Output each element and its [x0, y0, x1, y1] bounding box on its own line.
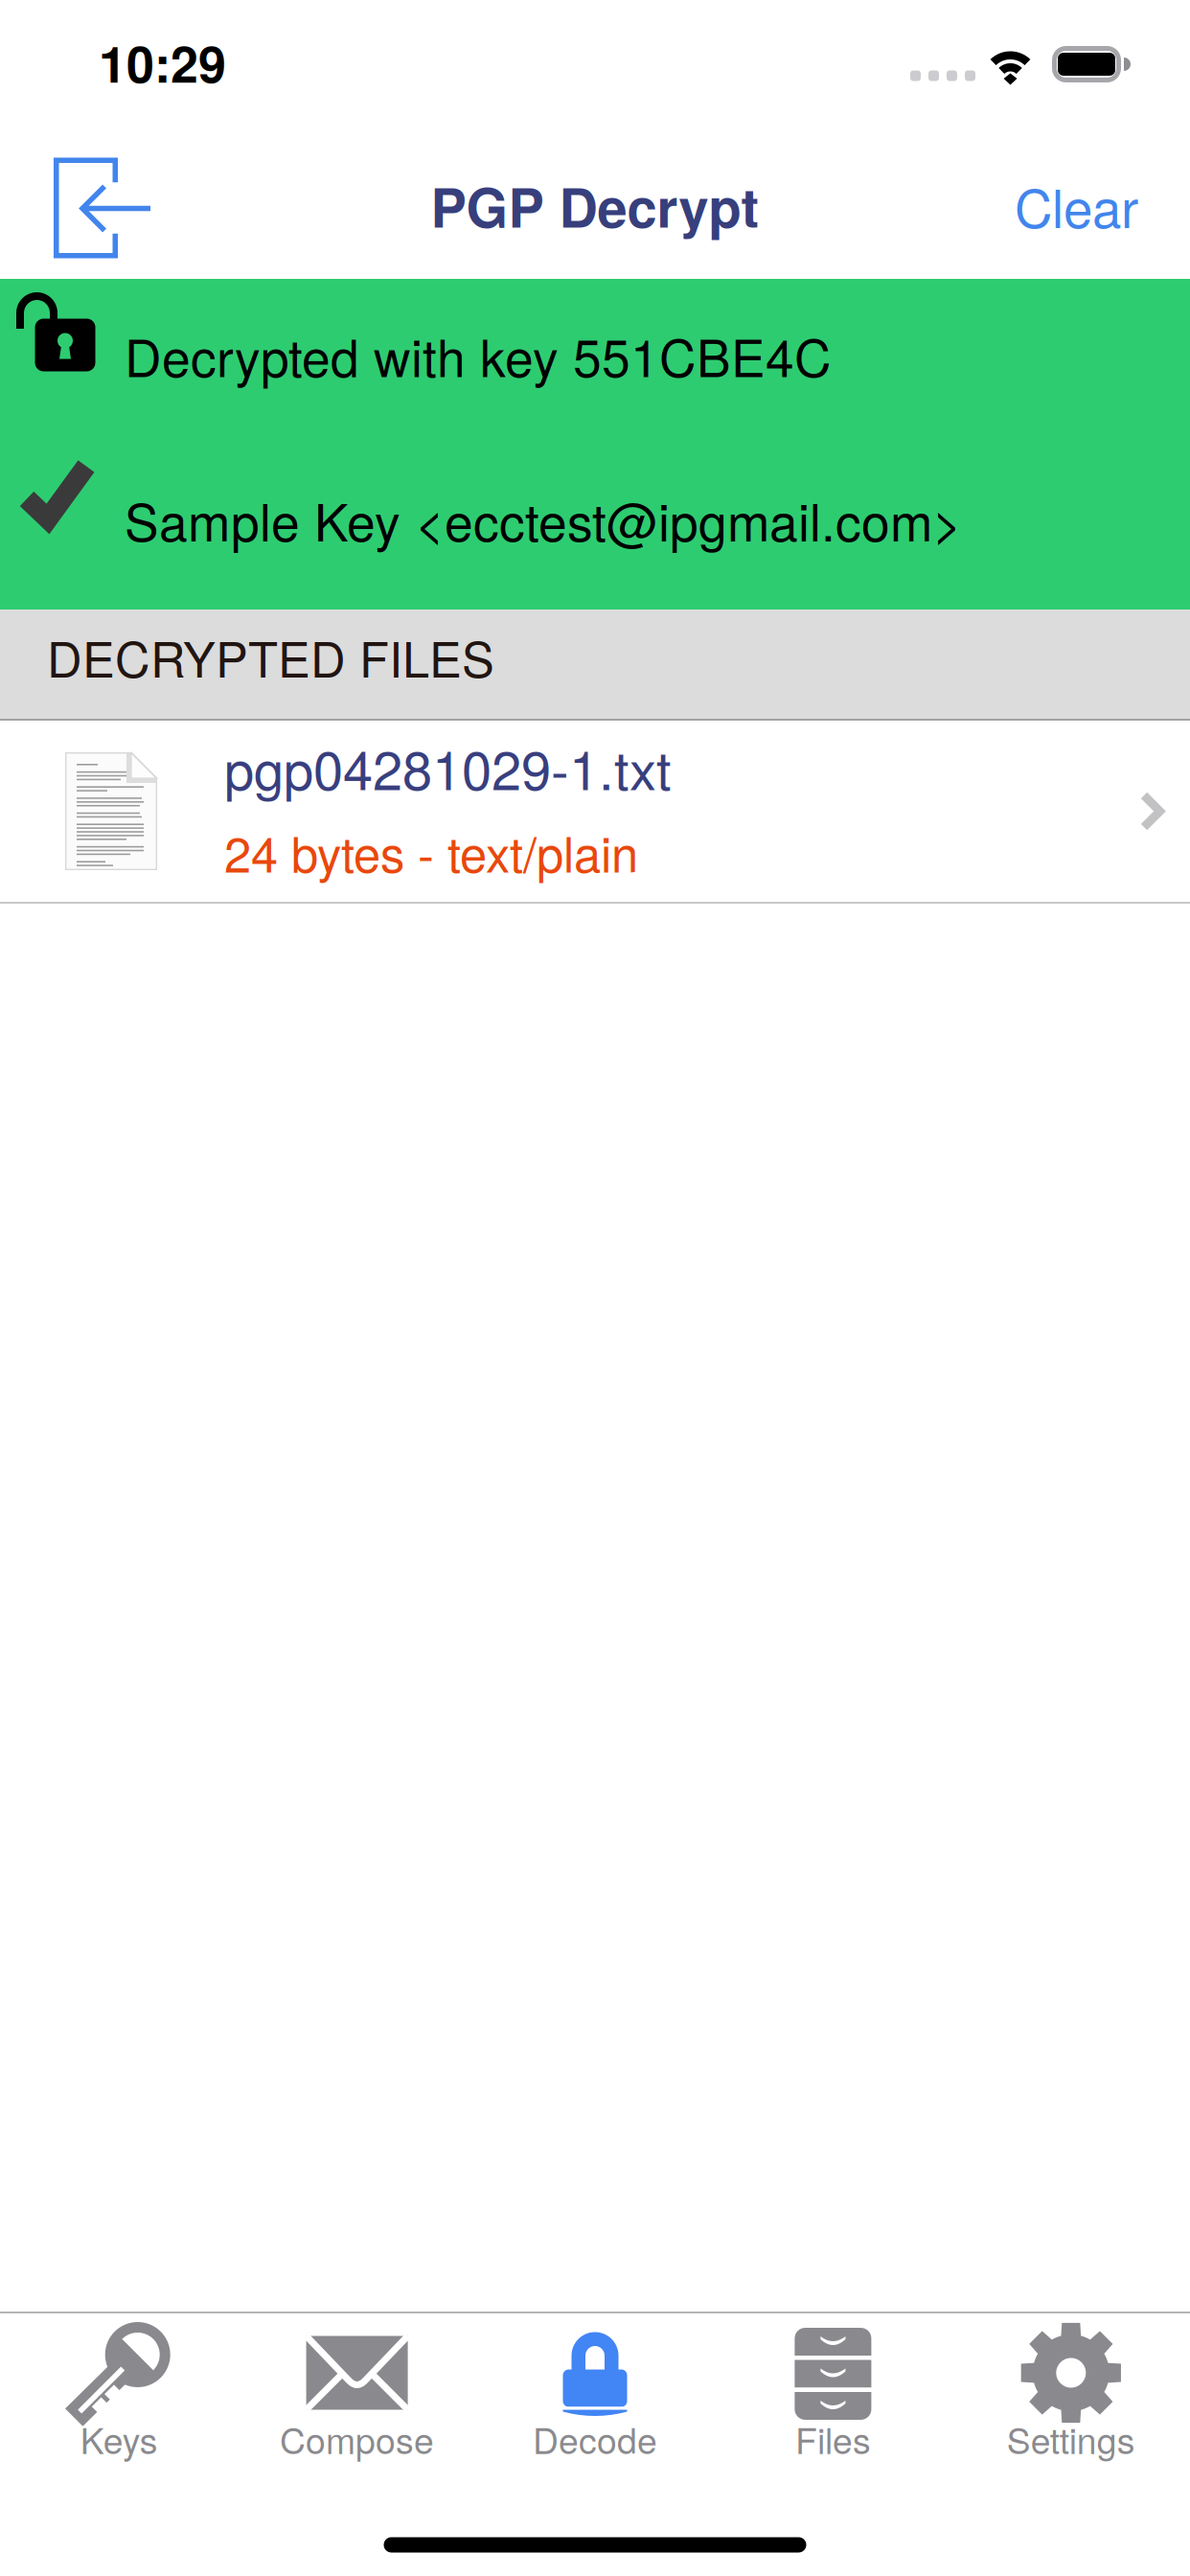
staticText: Settings: [1007, 2413, 1135, 2464]
staticText: pgp04281029-1.txt: [224, 728, 672, 805]
button[interactable]: pgp04281029-1.txt: [0, 721, 1190, 902]
staticText: Clear: [1015, 168, 1138, 243]
button[interactable]: Compose: [238, 2313, 476, 2470]
staticText: Decrypted with key 551CBE4C: [125, 318, 832, 392]
button[interactable]: Clear: [986, 138, 1190, 267]
button[interactable]: Decode: [476, 2313, 714, 2470]
staticText: Decode: [533, 2413, 657, 2464]
staticText: 10:29: [99, 27, 226, 98]
staticText: PGP Decrypt: [431, 167, 759, 244]
button[interactable]: Settings: [952, 2313, 1190, 2470]
staticText: DECRYPTED FILES: [47, 622, 494, 691]
button[interactable]: Files: [714, 2313, 952, 2470]
staticText: Keys: [80, 2413, 158, 2464]
staticText: Files: [795, 2413, 871, 2464]
staticText: Sample Key <ecctest@ipgmail.com>: [125, 483, 962, 556]
button[interactable]: Back: [0, 129, 171, 276]
button[interactable]: Keys: [0, 2313, 238, 2470]
staticText: 24 bytes - text/plain: [224, 817, 638, 886]
staticText: Compose: [280, 2413, 434, 2464]
